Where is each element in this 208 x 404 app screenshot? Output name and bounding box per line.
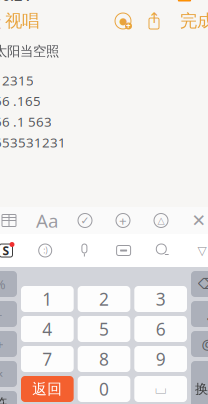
staticText: 6 (156, 317, 166, 340)
staticText: 5 (99, 317, 109, 340)
button[interactable]: Hide keyboard (188, 236, 208, 264)
staticText: 符 (0, 395, 7, 404)
staticText: 7 (42, 347, 52, 370)
staticText: 返回 (32, 380, 62, 398)
button[interactable]: ‹ (0, 8, 47, 34)
staticText: 太阳当空照 (0, 43, 59, 59)
staticText: ⌴ (155, 382, 167, 396)
staticText: @ (201, 334, 208, 354)
staticText: :) (43, 245, 47, 256)
staticText: 4 (42, 317, 52, 340)
staticText: Aa (36, 208, 58, 233)
button[interactable]: 0 (78, 376, 130, 402)
button[interactable]: 8 (78, 346, 130, 372)
staticText: - (0, 305, 2, 323)
staticText: 66 .1 563 (0, 113, 52, 130)
button[interactable]: Text format (32, 207, 62, 233)
staticText: 📶 (177, 0, 192, 2)
button[interactable]: Sogou input settings (0, 236, 20, 264)
button[interactable]: 7 (21, 346, 74, 372)
button[interactable]: 换行 (191, 361, 208, 404)
button[interactable]: Checklist (70, 207, 100, 233)
staticText: % (0, 275, 5, 293)
staticText: ↑ (148, 10, 160, 26)
button[interactable]: Voice input (70, 236, 98, 264)
staticText: 3 (156, 287, 166, 310)
button[interactable]: . (191, 301, 208, 327)
button[interactable]: ⌫ (191, 271, 208, 297)
button[interactable]: @ (191, 331, 208, 357)
button[interactable]: % (0, 271, 17, 297)
staticText: + (0, 335, 4, 353)
staticText: 8 (99, 347, 109, 370)
button[interactable]: 返回 (21, 376, 74, 402)
staticText: ● (119, 16, 127, 26)
button[interactable]: Draw (146, 207, 176, 233)
button[interactable]: 6 (134, 316, 187, 342)
staticText: 完成 (180, 10, 208, 32)
button[interactable]: 2 (78, 286, 130, 312)
staticText: 视唱 (5, 10, 39, 32)
staticText: + (119, 212, 127, 229)
button[interactable]: + (0, 331, 17, 357)
staticText: 12315 (0, 71, 34, 89)
staticText: 9 (156, 347, 166, 370)
staticText: 653531231 (0, 133, 66, 151)
button[interactable]: × (0, 361, 17, 387)
button[interactable]: ⌴ (134, 376, 187, 402)
button[interactable]: Search (149, 236, 177, 264)
staticText: ⌫ (197, 276, 208, 292)
staticText: × (0, 366, 3, 382)
staticText: S (2, 242, 9, 258)
staticText: + (126, 21, 131, 31)
button[interactable]: 9 (134, 346, 187, 372)
button[interactable]: 1 (21, 286, 74, 312)
staticText: 10:24 (0, 0, 30, 5)
button[interactable]: Keyboard (110, 236, 138, 264)
staticText: . (206, 303, 208, 325)
staticText: ✕ (191, 211, 206, 230)
button[interactable]: Share (136, 8, 172, 34)
button[interactable]: Emoji (31, 236, 59, 264)
button[interactable]: Table (0, 207, 24, 233)
button[interactable]: 符 (0, 391, 17, 404)
button[interactable]: Close (184, 207, 208, 233)
button[interactable]: 5 (78, 316, 130, 342)
staticText: 1 (42, 287, 52, 310)
staticText: △ (157, 215, 164, 226)
staticText: 66 .165 (0, 92, 41, 110)
staticText: 0 (99, 377, 109, 400)
staticText: ‹ (0, 4, 2, 38)
staticText: ▽ (197, 244, 206, 257)
button[interactable]: Add contact (110, 8, 136, 34)
button[interactable]: - (0, 301, 17, 327)
staticText: ✓ (80, 214, 89, 226)
staticText: 换行 (195, 381, 208, 397)
staticText: 2 (99, 287, 109, 310)
button[interactable]: 4 (21, 316, 74, 342)
button[interactable]: 完成 (172, 8, 208, 34)
button[interactable]: 3 (134, 286, 187, 312)
button[interactable]: Insert (108, 207, 138, 233)
